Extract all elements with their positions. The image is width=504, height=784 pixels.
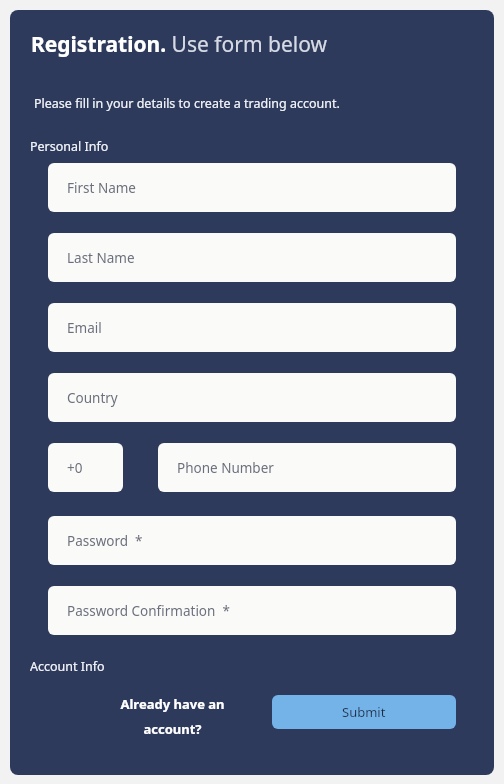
staticText: Already have an account? — [120, 695, 225, 737]
button[interactable]: +0 — [48, 443, 123, 492]
button[interactable]: Submit — [272, 695, 456, 729]
staticText: Phone Number — [177, 459, 274, 477]
staticText: Please fill in your details to create a … — [34, 95, 340, 112]
staticText: Country — [67, 389, 118, 407]
staticText: Submit — [342, 703, 386, 721]
button[interactable]: Password Confirmation * — [48, 586, 456, 635]
staticText: Password Confirmation * — [67, 602, 230, 620]
staticText: Last Name — [67, 249, 135, 267]
staticText: Password * — [67, 532, 143, 550]
staticText: Registration. Use form below — [31, 30, 327, 59]
button[interactable]: Email — [48, 303, 456, 352]
button[interactable]: Country — [48, 373, 456, 422]
button[interactable]: Already have an account? — [82, 695, 262, 753]
staticText: +0 — [67, 459, 83, 477]
button[interactable]: Last Name — [48, 233, 456, 282]
staticText: Personal Info — [30, 138, 109, 155]
button[interactable]: Password * — [48, 516, 456, 565]
staticText: First Name — [67, 179, 136, 197]
button[interactable]: Phone Number — [158, 443, 456, 492]
button[interactable]: First Name — [48, 163, 456, 212]
staticText: Email — [67, 319, 102, 337]
staticText: Account Info — [30, 658, 105, 675]
